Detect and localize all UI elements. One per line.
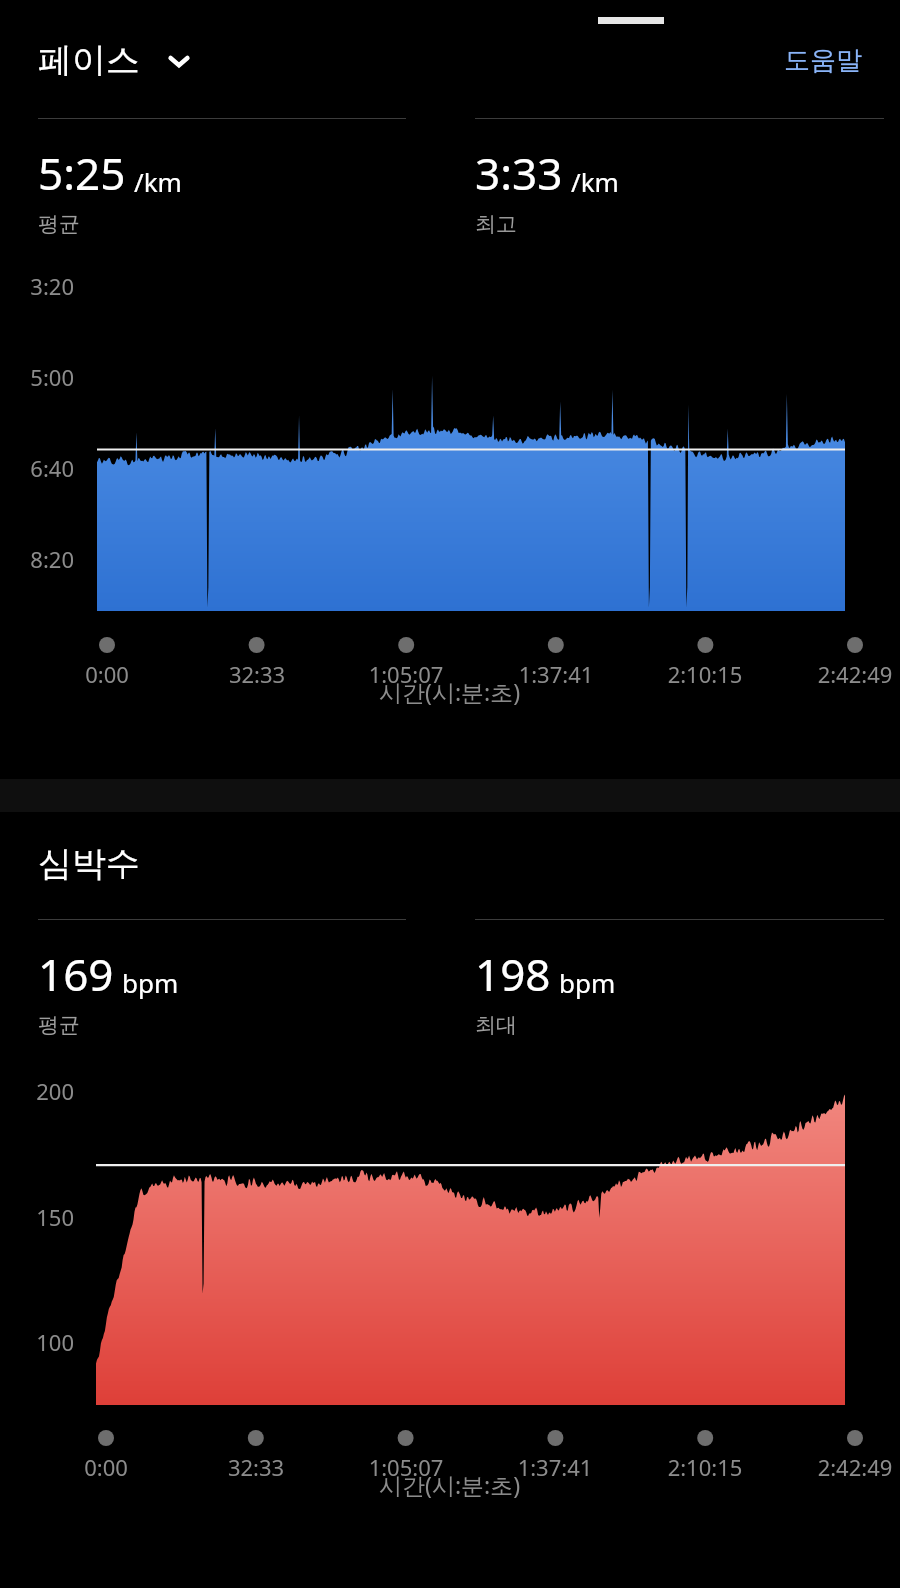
staticText: /km: [134, 164, 182, 199]
staticText: 6:40: [0, 453, 74, 483]
staticText: 1:37:41: [509, 1452, 601, 1482]
staticText: 100: [0, 1327, 74, 1357]
staticText: 198: [475, 944, 551, 1004]
staticText: 도움말: [784, 44, 862, 77]
staticText: 시간(시:분:초): [379, 676, 521, 707]
staticText: 169: [38, 944, 114, 1004]
staticText: 200: [0, 1076, 74, 1106]
staticText: 최대: [475, 1012, 517, 1038]
button[interactable]: 도움말: [784, 44, 862, 77]
staticText: bpm: [559, 965, 616, 1000]
staticText: 2:10:15: [659, 1452, 751, 1482]
staticText: 1:05:07: [360, 1452, 452, 1482]
staticText: 최고: [475, 211, 517, 237]
staticText: 0:00: [60, 1452, 152, 1482]
staticText: 시간(시:분:초): [379, 1469, 521, 1500]
staticText: 150: [0, 1202, 74, 1232]
staticText: 2:42:49: [809, 659, 900, 689]
staticText: bpm: [122, 965, 179, 1000]
staticText: 32:33: [210, 1452, 302, 1482]
staticText: 5:25: [38, 143, 126, 203]
staticText: /km: [571, 164, 619, 199]
button[interactable]: 페이스: [38, 39, 194, 82]
staticText: 평균: [38, 211, 80, 237]
staticText: 3:33: [475, 143, 563, 203]
staticText: 0:00: [61, 659, 153, 689]
staticText: 심박수: [38, 842, 140, 885]
staticText: 평균: [38, 1012, 80, 1038]
staticText: 2:42:49: [809, 1452, 900, 1482]
staticText: 페이스: [38, 39, 140, 82]
staticText: 8:20: [0, 544, 74, 574]
staticText: 32:33: [211, 659, 303, 689]
staticText: 1:37:41: [510, 659, 602, 689]
staticText: 2:10:15: [659, 659, 751, 689]
staticText: 1:05:07: [360, 659, 452, 689]
staticText: 3:20: [0, 271, 74, 301]
staticText: 5:00: [0, 362, 74, 392]
